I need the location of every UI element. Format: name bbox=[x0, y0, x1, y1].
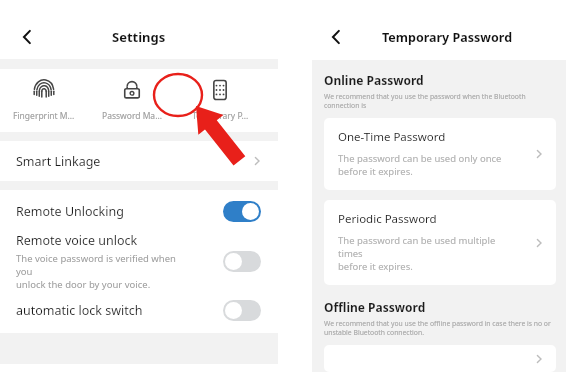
staticText: Offline Password bbox=[324, 299, 426, 315]
button[interactable]: Smart Linkage bbox=[0, 141, 278, 181]
button[interactable]: Remote voice unlock bbox=[0, 232, 278, 290]
staticText: The password can be used only once befor… bbox=[338, 152, 502, 178]
button[interactable]: Fingerprint M... bbox=[0, 76, 88, 122]
staticText: Fingerprint M... bbox=[13, 110, 75, 122]
staticText: One-Time Password bbox=[338, 129, 446, 145]
staticText: automatic lock switch bbox=[16, 302, 143, 319]
staticText: Remote Unlocking bbox=[16, 203, 124, 220]
button[interactable]: Switch off bbox=[223, 251, 261, 272]
staticText: Periodic Password bbox=[338, 211, 437, 227]
button[interactable]: automatic lock switch bbox=[0, 290, 278, 330]
staticText: We recommend that you use the password w… bbox=[324, 92, 560, 110]
button[interactable]: Periodic Password bbox=[324, 200, 556, 285]
button[interactable]: Back bbox=[10, 20, 44, 54]
staticText: The voice password is verified when you … bbox=[16, 252, 188, 290]
staticText: Temporary Password bbox=[382, 29, 513, 46]
button[interactable]: Switch off bbox=[223, 300, 261, 321]
button[interactable]: Password Ma... bbox=[88, 76, 176, 122]
staticText: Settings bbox=[112, 28, 166, 46]
staticText: Password Ma... bbox=[102, 110, 162, 122]
staticText: Online Password bbox=[324, 72, 424, 88]
button[interactable]: Switch on bbox=[223, 201, 261, 222]
staticText: Smart Linkage bbox=[16, 153, 101, 170]
button[interactable]: Remote Unlocking bbox=[0, 190, 278, 232]
button[interactable]: One-Time Password bbox=[324, 118, 556, 190]
staticText: The password can be used multiple times … bbox=[338, 234, 522, 273]
button[interactable]: Back bbox=[320, 21, 352, 53]
staticText: We recommend that you use the offline pa… bbox=[324, 319, 551, 337]
staticText: Temporary P... bbox=[192, 110, 249, 122]
button[interactable]: Temporary P... bbox=[176, 76, 264, 122]
staticText: Remote voice unlock bbox=[16, 232, 138, 249]
